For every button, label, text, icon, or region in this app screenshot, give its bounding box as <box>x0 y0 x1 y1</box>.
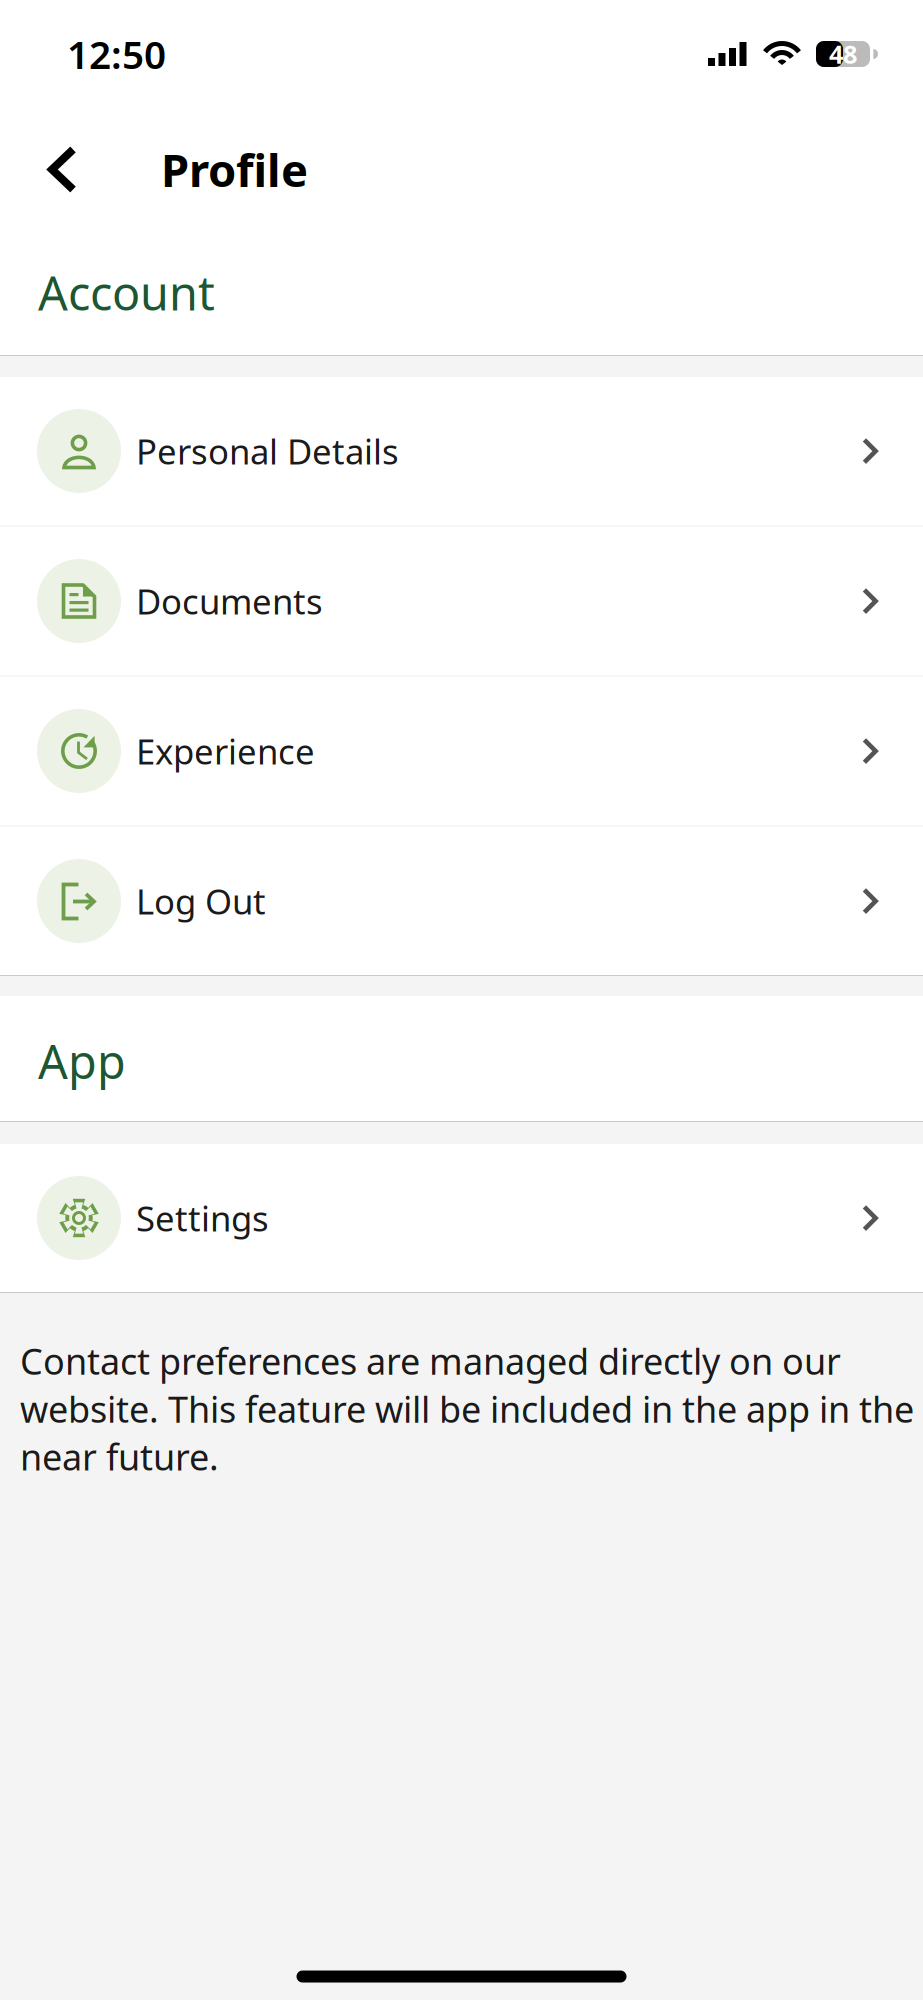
staticText: Log Out <box>136 878 266 924</box>
button[interactable]: Experience <box>0 677 923 825</box>
staticText: Contact preferences are managed directly… <box>20 1337 914 1480</box>
staticText: Profile <box>161 139 308 200</box>
staticText: 48 <box>829 37 857 71</box>
staticText: App <box>38 1030 126 1092</box>
staticText: Settings <box>136 1195 269 1241</box>
button[interactable]: Log Out <box>0 827 923 975</box>
staticText: Account <box>38 261 215 323</box>
button[interactable]: Settings <box>0 1144 923 1292</box>
button[interactable]: Documents <box>0 527 923 675</box>
staticText: Experience <box>136 728 315 774</box>
staticText: Personal Details <box>136 428 399 474</box>
button[interactable]: Back <box>0 104 161 225</box>
staticText: Documents <box>136 578 323 624</box>
button[interactable]: Personal Details <box>0 377 923 525</box>
staticText: 12:50 <box>67 28 166 80</box>
